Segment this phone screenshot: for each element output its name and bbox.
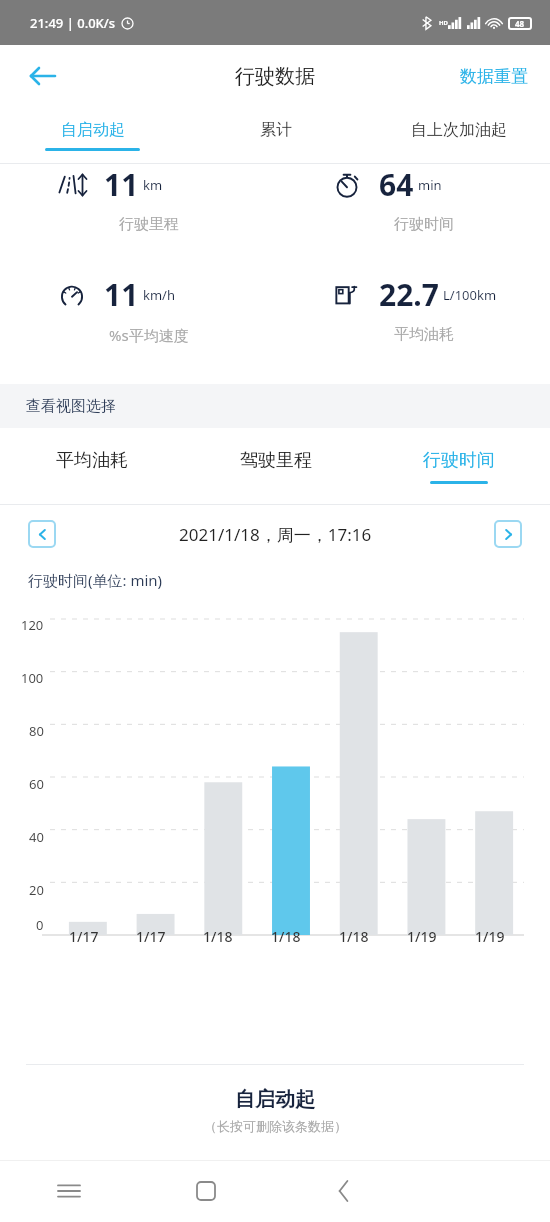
button[interactable]: 自启动起 <box>0 107 184 163</box>
button[interactable]: Next <box>494 520 522 548</box>
staticText: 自启动起 <box>235 1087 315 1112</box>
button[interactable]: 自上次加油起 <box>367 107 550 163</box>
staticText: 80 <box>29 722 44 740</box>
button[interactable]: Menu <box>0 1160 137 1222</box>
staticText: 1/19 <box>475 927 505 946</box>
staticText: 40 <box>29 828 44 846</box>
staticText: 驾驶里程 <box>240 449 312 472</box>
staticText: L/100km <box>443 286 497 304</box>
staticText: km <box>143 176 163 194</box>
button[interactable]: Previous <box>28 520 56 548</box>
staticText: 自启动起 <box>61 120 125 140</box>
staticText: 60 <box>29 775 44 793</box>
staticText: 1/18 <box>339 927 369 946</box>
staticText: 1/18 <box>203 927 233 946</box>
button[interactable]: 平均油耗 <box>0 428 184 504</box>
staticText: %s平均速度 <box>109 325 189 345</box>
staticText: 0 <box>36 916 44 934</box>
button[interactable]: 行驶时间 <box>367 428 550 504</box>
staticText: 48 <box>515 18 525 29</box>
button[interactable]: Home <box>137 1160 274 1222</box>
staticText: 行驶时间(单位: min) <box>28 570 163 590</box>
staticText: 100 <box>21 669 44 687</box>
staticText: 120 <box>21 616 44 634</box>
staticText: 21:49 | 0.0K/s <box>30 14 116 32</box>
button[interactable]: Back <box>18 52 66 100</box>
staticText: 累计 <box>260 120 292 140</box>
staticText: 11 <box>104 164 139 205</box>
staticText: 1/18 <box>271 927 301 946</box>
button[interactable]: Back <box>274 1160 412 1222</box>
staticText: 查看视图选择 <box>26 397 116 416</box>
staticText: 行驶时间 <box>423 449 495 472</box>
staticText: 行驶时间 <box>394 215 454 234</box>
staticText: km/h <box>143 286 175 304</box>
button[interactable]: 数据重置 <box>454 60 534 93</box>
button[interactable]: 驾驶里程 <box>184 428 367 504</box>
staticText: 行驶里程 <box>119 215 179 234</box>
staticText: min <box>418 176 442 194</box>
staticText: 22.7 <box>379 274 439 315</box>
staticText: 平均油耗 <box>56 449 128 472</box>
staticText: 11 <box>104 274 139 315</box>
staticText: 平均油耗 <box>394 325 454 344</box>
staticText: 1/17 <box>136 927 166 946</box>
staticText: 2021/1/18，周一，17:16 <box>179 523 372 546</box>
staticText: 1/17 <box>69 927 99 946</box>
staticText: 1/19 <box>407 927 437 946</box>
staticText: 行驶数据 <box>235 64 315 89</box>
staticText: 64 <box>379 164 414 205</box>
staticText: 20 <box>29 881 44 899</box>
staticText: 数据重置 <box>460 66 528 87</box>
staticText: HD <box>439 19 448 27</box>
button[interactable]: 累计 <box>184 107 367 163</box>
staticText: （长按可删除该条数据） <box>204 1118 347 1134</box>
staticText: 自上次加油起 <box>411 120 507 140</box>
